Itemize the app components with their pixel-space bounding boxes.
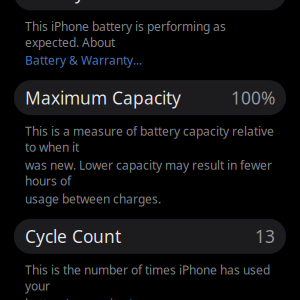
staticText: Battery Health xyxy=(25,0,143,4)
staticText: 100% xyxy=(231,86,275,109)
staticText: battery's capacity. xyxy=(25,296,129,300)
button[interactable]: Maximum Capacity xyxy=(14,80,286,115)
staticText: This iPhone battery is performing as exp… xyxy=(25,18,226,50)
button[interactable]: Learn more... xyxy=(129,296,203,300)
staticText: 13 xyxy=(255,225,275,248)
staticText: Battery & Warranty... xyxy=(25,52,142,68)
staticText: Maximum Capacity xyxy=(25,86,181,109)
button[interactable]: Battery Health xyxy=(14,0,286,10)
staticText: Cycle Count xyxy=(25,225,121,248)
button[interactable]: Battery & Warranty... xyxy=(25,52,142,68)
staticText: was new. Lower capacity may result in fe… xyxy=(25,157,272,189)
staticText: Learn more... xyxy=(129,296,203,300)
button[interactable]: Cycle Count xyxy=(14,219,286,254)
staticText: This is a measure of battery capacity re… xyxy=(25,123,274,155)
staticText: This is the number of times iPhone has u… xyxy=(25,262,270,294)
staticText: usage between charges. xyxy=(25,191,161,207)
